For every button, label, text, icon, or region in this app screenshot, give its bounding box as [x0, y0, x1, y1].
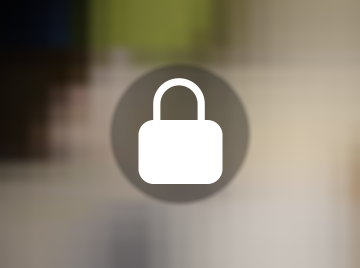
- button[interactable]: Locked: [0, 0, 360, 268]
